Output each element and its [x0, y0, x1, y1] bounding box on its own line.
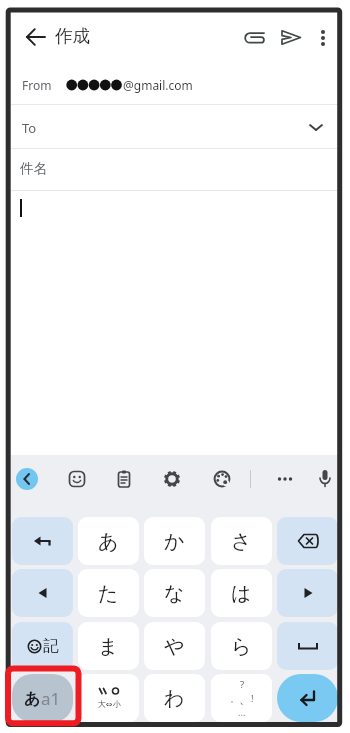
button[interactable]: は	[211, 569, 272, 617]
staticText: @gmail.com	[123, 77, 193, 93]
staticText: わ	[164, 686, 185, 711]
staticText: 大⇔小	[98, 699, 121, 709]
staticText: た	[98, 581, 119, 606]
button[interactable]	[277, 622, 338, 670]
button[interactable]	[277, 569, 338, 617]
button[interactable]	[11, 191, 338, 451]
staticText: From	[22, 77, 52, 93]
button[interactable]: 記	[12, 622, 73, 670]
button[interactable]	[238, 22, 269, 53]
staticText: 記	[43, 636, 59, 656]
button[interactable]	[12, 569, 73, 617]
button[interactable]: か	[144, 517, 205, 565]
button[interactable]: あ	[78, 517, 139, 565]
button[interactable]	[11, 62, 338, 104]
button[interactable]	[210, 467, 234, 491]
button[interactable]	[112, 467, 136, 491]
button[interactable]: な	[144, 569, 205, 617]
button[interactable]	[65, 467, 89, 491]
staticText: To	[22, 119, 37, 137]
staticText: は	[231, 581, 252, 606]
staticText: ら	[231, 634, 252, 659]
button[interactable]: ら	[211, 622, 272, 670]
button[interactable]: さ	[211, 517, 272, 565]
button[interactable]	[272, 467, 298, 491]
button[interactable]: わ	[144, 674, 205, 722]
button[interactable]	[11, 105, 338, 148]
button[interactable]: た	[78, 569, 139, 617]
button[interactable]	[313, 466, 337, 492]
button[interactable]	[276, 22, 306, 53]
button[interactable]: あ	[12, 674, 73, 722]
button[interactable]	[16, 468, 38, 490]
staticText: や	[164, 634, 185, 659]
button[interactable]: ?	[211, 674, 272, 722]
staticText: ま	[98, 634, 119, 659]
button[interactable]: や	[144, 622, 205, 670]
button[interactable]: ま	[78, 622, 139, 670]
staticText: 作成	[55, 25, 90, 47]
staticText: な	[164, 581, 185, 606]
staticText: …	[238, 706, 246, 719]
button[interactable]: 大⇔小	[78, 674, 139, 722]
button[interactable]	[160, 467, 184, 491]
staticText: 。	[230, 693, 239, 704]
staticText: ?	[240, 678, 245, 691]
staticText: さ	[231, 529, 252, 554]
button[interactable]	[310, 23, 336, 53]
button[interactable]	[20, 21, 52, 53]
button[interactable]	[277, 517, 338, 565]
staticText: a1	[41, 687, 61, 710]
button[interactable]	[11, 149, 338, 190]
staticText: 件名	[20, 160, 47, 177]
button[interactable]	[277, 674, 338, 722]
staticText: あ	[24, 689, 41, 709]
staticText: 、	[239, 691, 251, 706]
staticText: か	[164, 529, 185, 554]
button[interactable]	[12, 517, 73, 565]
staticText: !	[251, 692, 254, 705]
staticText: あ	[98, 529, 119, 554]
